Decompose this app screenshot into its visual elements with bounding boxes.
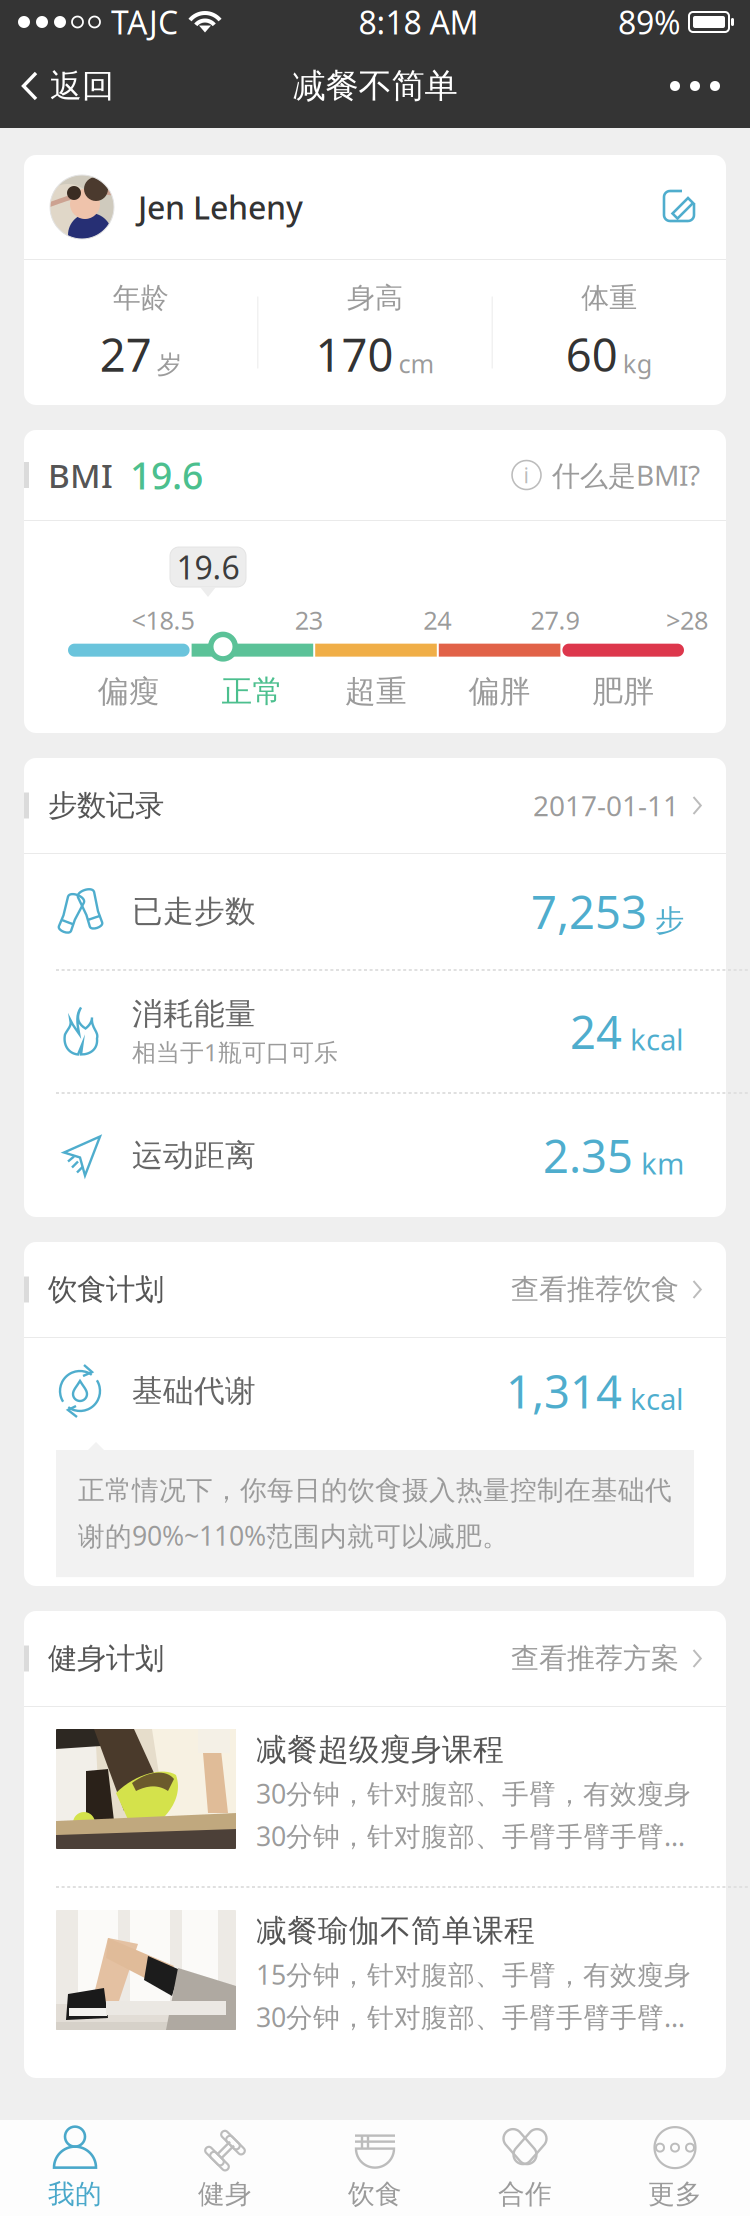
staticText: 返回 <box>50 66 114 106</box>
button[interactable]: 饮食计划 <box>24 1242 726 1337</box>
staticText: 偏胖 <box>469 673 531 710</box>
staticText: 更多 <box>648 2178 702 2210</box>
staticText: 健身 <box>198 2178 252 2210</box>
staticText: i <box>523 461 529 489</box>
staticText: 饮食 <box>348 2178 402 2210</box>
staticText: 27.9 <box>531 603 580 637</box>
staticText: 饮食计划 <box>48 1271 164 1307</box>
staticText: 步数记录 <box>48 787 164 823</box>
button[interactable]: 消耗能量 <box>24 971 726 1092</box>
button[interactable]: i <box>512 436 726 514</box>
staticText: 查看推荐饮食 <box>511 1272 679 1307</box>
staticText: 30分钟，针对腹部、手臂，有效瘦身 <box>256 1776 691 1811</box>
staticText: 正常 <box>221 673 283 710</box>
button[interactable]: 健身计划 <box>24 1611 726 1706</box>
staticText: 正常情况下，你每日的饮食摄入热量控制在基础代谢的90%~110%范围内就可以减肥… <box>78 1474 672 1553</box>
staticText: 23 <box>295 603 323 637</box>
button[interactable]: 更多 <box>600 2120 750 2216</box>
staticText: BMI <box>48 453 113 497</box>
staticText: 体重 <box>581 281 637 315</box>
staticText: 基础代谢 <box>132 1372 256 1410</box>
button[interactable]: 编辑资料 <box>642 167 726 247</box>
staticText: 减餐瑜伽不简单课程 <box>256 1912 535 1950</box>
staticText: 30分钟，针对腹部、手臂手臂手臂… <box>256 1818 685 1853</box>
staticText: 年龄 <box>113 281 169 315</box>
button[interactable]: 返回 <box>0 50 114 122</box>
staticText: 27 <box>100 324 152 384</box>
staticText: 24 <box>570 1001 622 1062</box>
button[interactable]: 合作 <box>450 2120 600 2216</box>
staticText: 2017-01-11 <box>533 787 679 824</box>
staticText: 步 <box>655 903 684 939</box>
staticText: 减餐不简单 <box>292 65 457 106</box>
staticText: km <box>641 1144 684 1183</box>
staticText: 消耗能量 <box>132 995 256 1033</box>
staticText: 合作 <box>498 2178 552 2210</box>
staticText: 肥胖 <box>592 673 654 710</box>
staticText: 查看推荐方案 <box>511 1641 679 1676</box>
staticText: 7,253 <box>531 881 647 942</box>
button[interactable]: 更多选项 <box>670 57 750 115</box>
staticText: 相当于1瓶可口可乐 <box>132 1036 338 1068</box>
staticText: 已走步数 <box>132 893 256 930</box>
button[interactable]: 基础代谢 <box>24 1338 726 1444</box>
button[interactable]: 我的 <box>0 2120 150 2216</box>
staticText: TAJC <box>111 1 178 43</box>
staticText: 运动距离 <box>132 1137 256 1174</box>
staticText: <18.5 <box>131 603 194 637</box>
staticText: 岁 <box>157 349 182 380</box>
button[interactable]: 已走步数 <box>24 854 726 969</box>
staticText: 30分钟，针对腹部、手臂手臂手臂… <box>256 1999 685 2034</box>
staticText: 什么是BMI? <box>552 456 700 494</box>
staticText: 1,314 <box>506 1361 622 1421</box>
staticText: 身高 <box>347 281 403 315</box>
staticText: 2.35 <box>543 1125 633 1186</box>
staticText: 8:18 AM <box>358 1 478 43</box>
staticText: 170 <box>315 324 393 384</box>
staticText: 60 <box>566 324 618 384</box>
button[interactable]: 步数记录 <box>24 758 726 853</box>
staticText: cm <box>398 347 434 380</box>
staticText: 我的 <box>48 2178 102 2210</box>
staticText: 15分钟，针对腹部、手臂，有效瘦身 <box>256 1957 691 1992</box>
button[interactable]: 减餐瑜伽不简单课程 <box>24 1888 726 2078</box>
staticText: kg <box>623 347 653 380</box>
staticText: 19.6 <box>130 450 203 500</box>
staticText: >28 <box>666 603 708 637</box>
staticText: 减餐超级瘦身课程 <box>256 1731 504 1769</box>
button[interactable]: 饮食 <box>300 2120 450 2216</box>
staticText: 24 <box>423 603 451 637</box>
staticText: 19.6 <box>176 546 239 588</box>
staticText: kcal <box>630 1020 684 1059</box>
staticText: 89% <box>618 1 681 43</box>
button[interactable]: 运动距离 <box>24 1094 726 1217</box>
staticText: kcal <box>630 1379 684 1418</box>
staticText: 超重 <box>345 673 407 710</box>
staticText: 健身计划 <box>48 1640 164 1676</box>
staticText: 偏瘦 <box>98 673 160 710</box>
button[interactable]: 健身 <box>150 2120 300 2216</box>
button[interactable]: 减餐超级瘦身课程 <box>24 1707 726 1886</box>
button[interactable]: Jen Leheny <box>24 155 303 259</box>
staticText: Jen Leheny <box>138 186 303 228</box>
